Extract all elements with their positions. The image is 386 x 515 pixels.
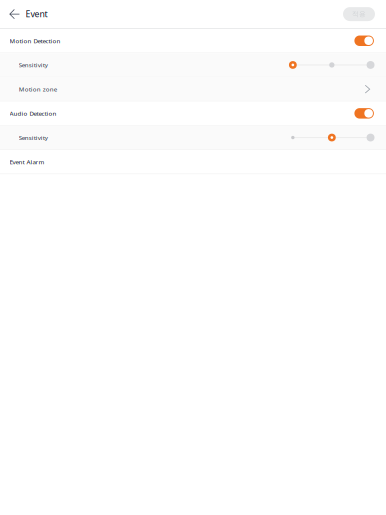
button[interactable]: Motion zone [0,77,386,102]
button[interactable]: Audio Detection [354,108,374,119]
button[interactable]: Motion Detection [354,35,374,46]
staticText: Event Alarm [10,158,45,166]
button[interactable]: Back [0,0,26,28]
staticText: Sensitivity [19,133,48,142]
staticText: Sensitivity [19,61,48,69]
staticText: Event [26,8,48,20]
button[interactable]: Event Alarm [0,150,386,174]
staticText: Audio Detection [10,109,57,118]
staticText: Motion Detection [10,37,61,45]
staticText: Motion zone [19,85,57,93]
staticText: 적용 [352,10,366,18]
button[interactable]: 적용 [343,7,375,21]
